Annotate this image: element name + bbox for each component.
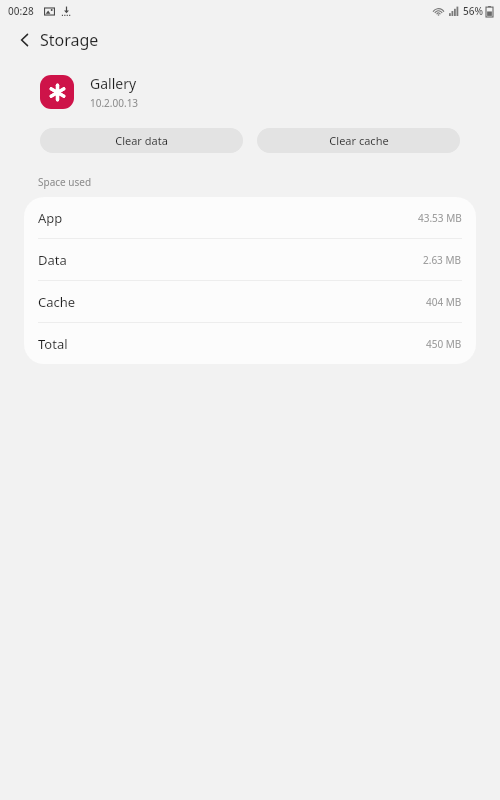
staticText: 404 MB [426,295,462,309]
staticText: Data [38,251,67,269]
button[interactable]: Clear cache [257,128,460,153]
staticText: Storage [40,29,99,51]
button[interactable]: Data [24,239,476,280]
staticText: Clear data [115,133,168,148]
staticText: Cache [38,293,76,311]
staticText: Gallery [90,74,137,93]
button[interactable]: App [24,197,476,238]
button[interactable]: Clear data [40,128,243,153]
staticText: 450 MB [426,337,462,351]
staticText: 43.53 MB [418,211,462,225]
button[interactable]: Total [24,323,476,364]
staticText: 2.63 MB [423,253,462,267]
button[interactable]: Cache [24,281,476,322]
staticText: Clear cache [329,133,389,148]
staticText: 00:28 [8,4,34,18]
staticText: 56% [463,4,483,18]
button[interactable]: Back [8,23,42,57]
staticText: 10.2.00.13 [90,96,139,110]
staticText: Total [38,335,68,353]
staticText: Space used [38,175,92,189]
staticText: App [38,209,63,227]
